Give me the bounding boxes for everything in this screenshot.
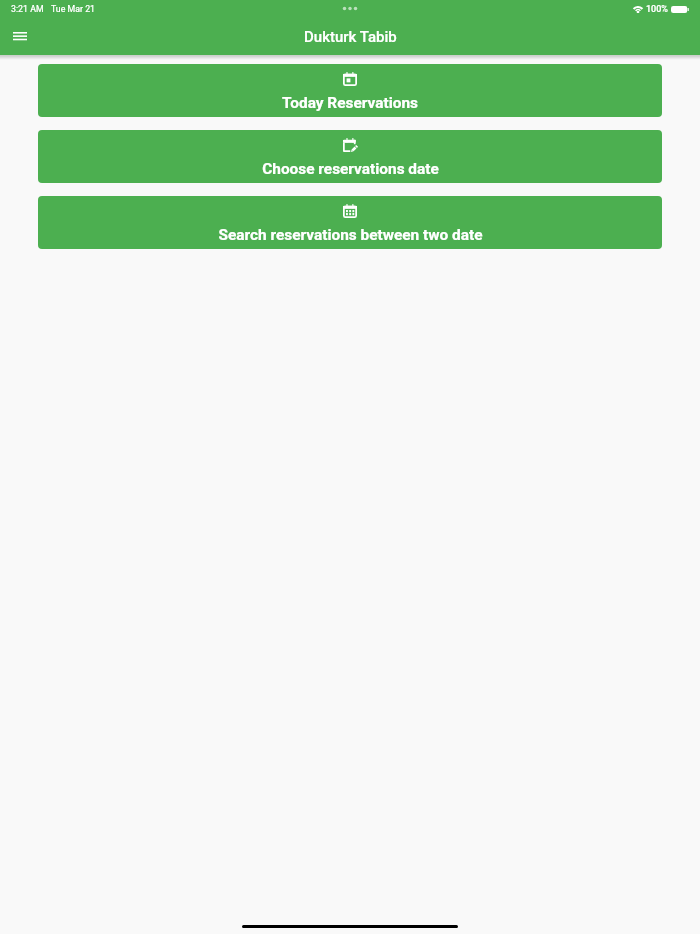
staticText: 3:21 AM [11, 4, 44, 14]
button[interactable]: Choose reservations date [38, 130, 662, 183]
staticText: 100% [646, 4, 668, 15]
staticText: Today Reservations [282, 94, 418, 112]
button[interactable]: Today Reservations [38, 64, 662, 117]
staticText: Search reservations between two date [218, 226, 483, 244]
button[interactable]: Open navigation menu [3, 21, 36, 54]
staticText: Dukturk Tabib [304, 28, 397, 46]
staticText: Choose reservations date [262, 160, 439, 178]
staticText: Tue Mar 21 [51, 4, 96, 14]
button[interactable]: Search reservations between two date [38, 196, 662, 249]
